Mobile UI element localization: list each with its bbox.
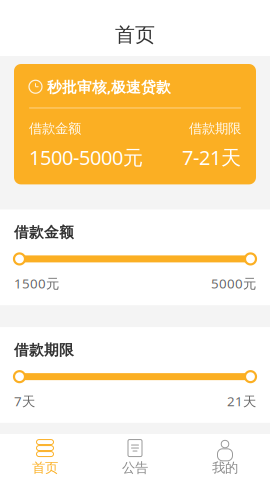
button[interactable]: 立即借款 <box>36 450 234 480</box>
staticText: 借款期限 <box>14 341 74 359</box>
staticText: 5000元 <box>211 274 256 292</box>
staticText: 首页 <box>115 22 155 47</box>
button[interactable]: 我的 <box>180 434 270 480</box>
button[interactable]: 首页 <box>0 434 90 480</box>
staticText: 21天 <box>227 392 256 410</box>
staticText: 借款金额 <box>29 120 81 137</box>
staticText: 1500-5000元 <box>29 144 143 170</box>
staticText: 我的 <box>212 460 238 476</box>
staticText: 立即借款 <box>95 460 175 480</box>
staticText: 秒批审核,极速贷款 <box>47 77 171 96</box>
staticText: 借款金额 <box>14 223 74 241</box>
staticText: 1500元 <box>14 274 59 292</box>
staticText: 公告 <box>122 460 148 476</box>
staticText: 首页 <box>32 460 58 476</box>
staticText: 7-21天 <box>182 144 241 170</box>
staticText: 借款期限 <box>189 120 241 137</box>
button[interactable]: 公告 <box>90 434 180 480</box>
staticText: 7天 <box>14 392 35 410</box>
